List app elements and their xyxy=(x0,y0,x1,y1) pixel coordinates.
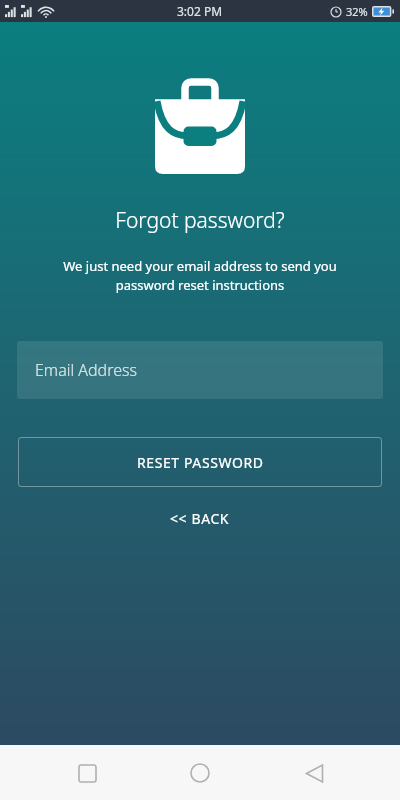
staticText: We just need your email address to send … xyxy=(24,257,376,294)
button[interactable]: Home xyxy=(173,746,227,800)
staticText: RESET PASSWORD xyxy=(137,453,264,472)
staticText: 32% xyxy=(346,4,368,19)
staticText: << BACK xyxy=(170,509,230,528)
button[interactable]: << BACK xyxy=(148,501,252,536)
button[interactable]: Recent apps xyxy=(60,746,114,800)
staticText: 3:02 PM xyxy=(177,3,223,19)
button[interactable]: Back xyxy=(287,746,341,800)
staticText: Forgot password? xyxy=(0,206,400,235)
staticText: Email Address xyxy=(35,359,137,381)
button[interactable]: Email Address xyxy=(17,341,383,399)
button[interactable]: RESET PASSWORD xyxy=(18,437,382,487)
